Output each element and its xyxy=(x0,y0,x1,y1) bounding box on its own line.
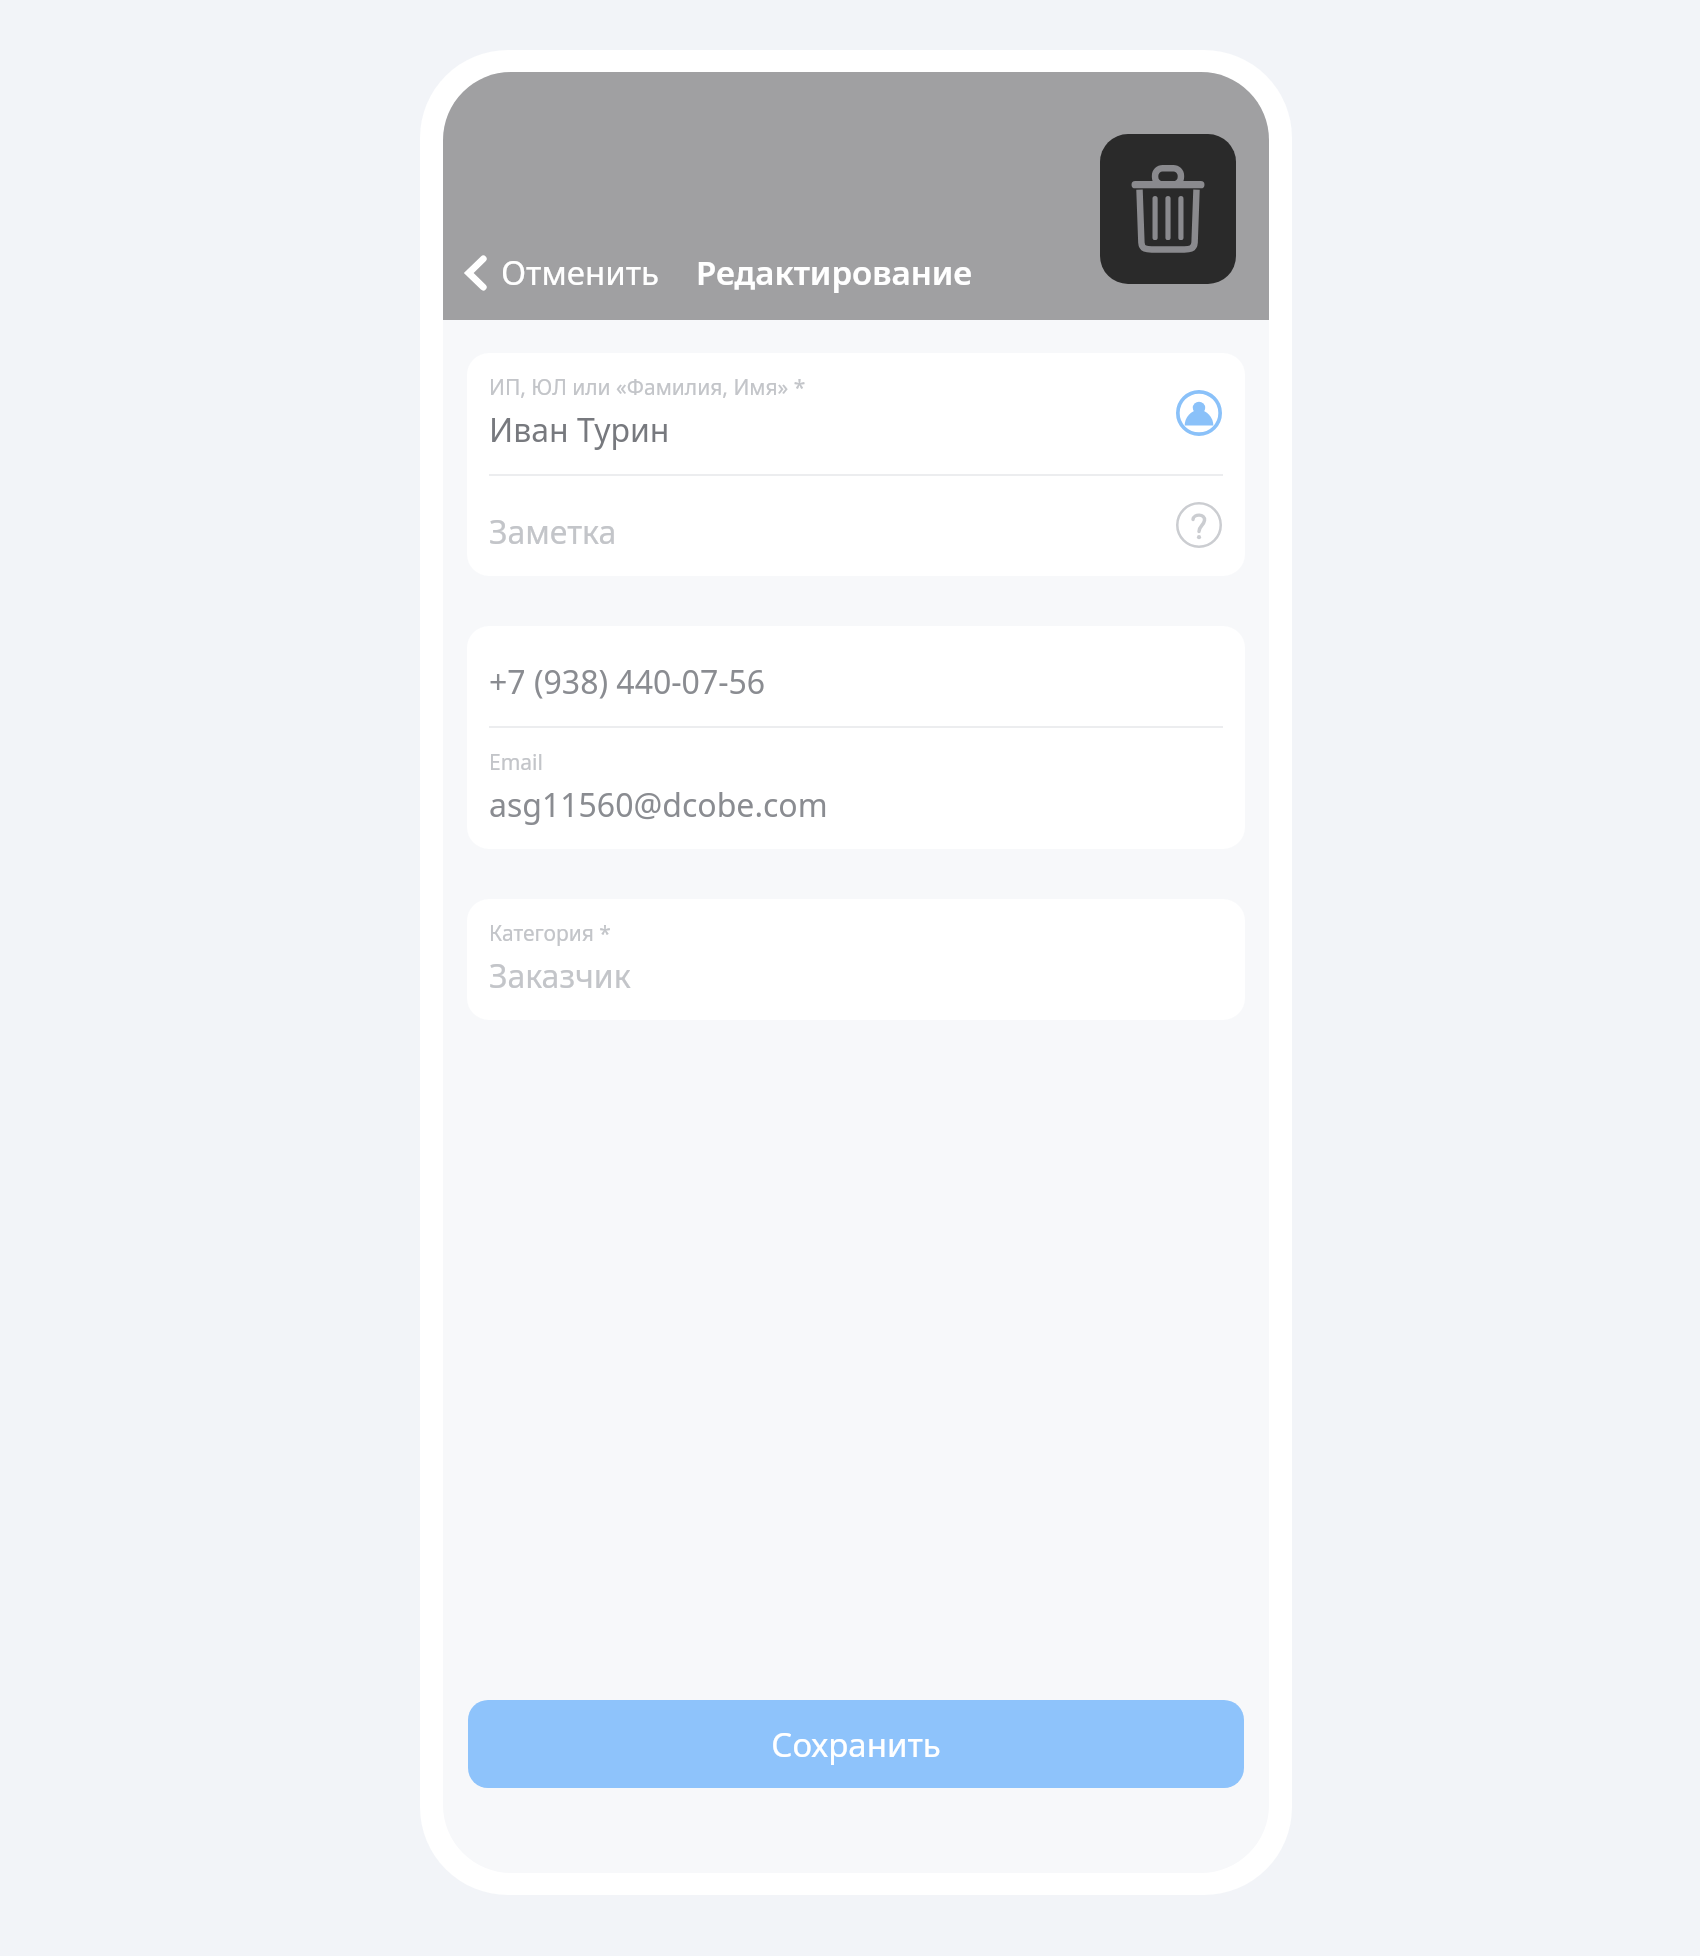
staticText: +7 (938) 440-07-56 xyxy=(489,660,766,704)
staticText: Email xyxy=(489,748,543,777)
staticText: Категория * xyxy=(489,919,611,948)
staticText: Отменить xyxy=(501,250,660,295)
button[interactable]: Заметка xyxy=(467,476,1245,576)
button[interactable]: Сохранить xyxy=(468,1700,1244,1788)
button[interactable]: Категория * xyxy=(467,899,1245,1020)
staticText: Иван Турин xyxy=(489,408,670,452)
staticText: Редактирование xyxy=(696,250,973,295)
button[interactable]: ИП, ЮЛ или «Фамилия, Имя» * xyxy=(467,353,1245,474)
button[interactable]: Email xyxy=(467,728,1245,849)
staticText: Заметка xyxy=(489,510,617,554)
button[interactable]: Choose contact xyxy=(1175,389,1223,437)
staticText: asg11560@dcobe.com xyxy=(489,783,828,827)
button[interactable]: Help xyxy=(1175,501,1223,549)
button[interactable]: +7 (938) 440-07-56 xyxy=(467,626,1245,726)
staticText: Сохранить xyxy=(771,1722,941,1767)
button[interactable]: Отменить xyxy=(455,244,668,301)
button[interactable]: Delete xyxy=(1100,134,1236,284)
staticText: Заказчик xyxy=(489,954,631,998)
staticText: ИП, ЮЛ или «Фамилия, Имя» * xyxy=(489,373,806,402)
